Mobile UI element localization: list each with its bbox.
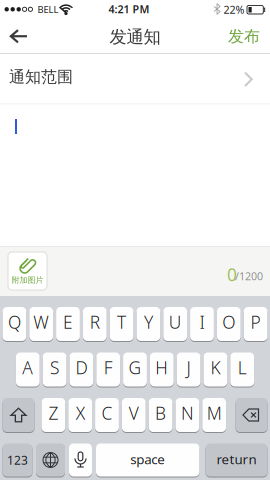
staticText: BELL	[37, 3, 58, 16]
button[interactable]: I	[190, 307, 214, 341]
staticText: 通知范围	[9, 67, 73, 87]
button[interactable]: Delete	[235, 398, 267, 432]
staticText: F	[104, 356, 113, 379]
staticText: Q	[8, 310, 21, 333]
staticText: X	[76, 401, 85, 424]
staticText: T	[117, 310, 126, 333]
button[interactable]: space	[96, 443, 199, 476]
staticText: N	[181, 401, 194, 424]
staticText: V	[129, 401, 139, 424]
button[interactable]: C	[95, 398, 119, 432]
button[interactable]: J	[177, 352, 200, 386]
button[interactable]: 发布	[228, 27, 260, 46]
button[interactable]: Shift	[2, 398, 34, 432]
button[interactable]: W	[29, 307, 53, 341]
button[interactable]: P	[244, 307, 267, 341]
button[interactable]: H	[150, 352, 174, 386]
button[interactable]: L	[230, 352, 254, 386]
button[interactable]: T	[110, 307, 133, 341]
staticText: M	[207, 401, 222, 424]
staticText: U	[169, 310, 182, 333]
staticText: 123	[7, 452, 28, 468]
staticText: A	[22, 356, 33, 379]
button[interactable]: Q	[2, 307, 26, 341]
button[interactable]: Dictate	[69, 443, 92, 476]
staticText: C	[101, 401, 112, 424]
button[interactable]: Y	[136, 307, 160, 341]
staticText: space	[130, 450, 165, 468]
button[interactable]: return	[205, 443, 267, 476]
button[interactable]: D	[69, 352, 93, 386]
staticText: D	[75, 356, 87, 379]
button[interactable]: M	[202, 398, 226, 432]
staticText: J	[187, 356, 191, 379]
button[interactable]: B	[149, 398, 172, 432]
staticText: P	[251, 310, 261, 333]
staticText: Y	[144, 310, 153, 333]
staticText: 附加图片	[11, 275, 43, 285]
button[interactable]: Numbers	[2, 443, 32, 476]
staticText: E	[63, 310, 73, 333]
button[interactable]: Next keyboard	[36, 443, 65, 476]
staticText: 发通知	[109, 26, 160, 48]
staticText: 22%	[223, 2, 244, 17]
staticText: 0	[227, 263, 237, 286]
button[interactable]: N	[175, 398, 199, 432]
staticText: B	[155, 401, 166, 424]
staticText: S	[50, 356, 59, 379]
staticText: L	[238, 356, 247, 379]
staticText: return	[216, 450, 256, 468]
button[interactable]: S	[43, 352, 66, 386]
staticText: I	[199, 310, 204, 333]
button[interactable]: Z	[41, 398, 65, 432]
staticText: R	[90, 310, 100, 333]
button[interactable]: F	[96, 352, 120, 386]
button[interactable]: A	[16, 352, 40, 386]
button[interactable]: G	[123, 352, 147, 386]
button[interactable]: U	[163, 307, 187, 341]
staticText: K	[210, 356, 220, 379]
button[interactable]: K	[203, 352, 227, 386]
button[interactable]: R	[83, 307, 107, 341]
staticText: 发布	[228, 27, 260, 46]
staticText: 4:21 PM	[108, 2, 149, 16]
button[interactable]: X	[68, 398, 92, 432]
button[interactable]: 通知范围	[0, 54, 270, 104]
button[interactable]: Back	[10, 29, 27, 43]
staticText: Z	[48, 401, 58, 424]
staticText: H	[155, 356, 168, 379]
button[interactable]: 附加图片	[8, 252, 47, 290]
button[interactable]: O	[217, 307, 241, 341]
button[interactable]: V	[122, 398, 146, 432]
staticText: W	[33, 310, 49, 333]
staticText: G	[128, 356, 141, 379]
staticText: /1200	[235, 269, 263, 283]
button[interactable]: E	[56, 307, 80, 341]
staticText: O	[222, 310, 235, 333]
